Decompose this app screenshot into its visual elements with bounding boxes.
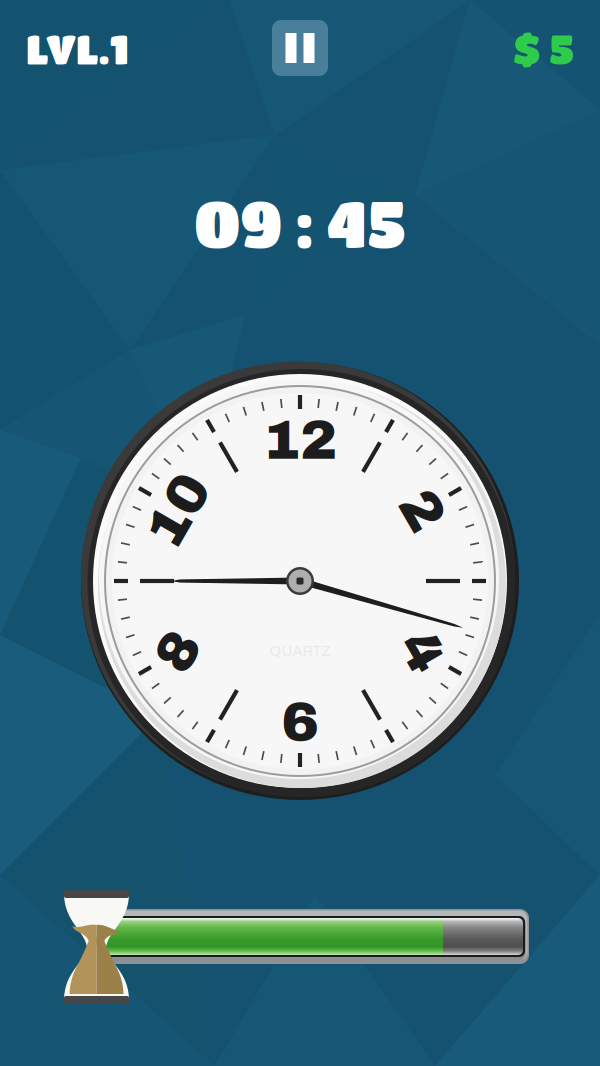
staticText: 8: [159, 621, 196, 682]
staticText: 2: [404, 480, 441, 541]
staticText: 45: [327, 186, 406, 259]
staticText: 09: [194, 186, 282, 259]
staticText: QUARTZ: [269, 643, 330, 659]
button[interactable]: Pause: [272, 20, 328, 76]
staticText: 10: [141, 480, 215, 541]
staticText: :: [295, 186, 314, 259]
staticText: LVL.1: [26, 24, 129, 72]
staticText: $ 5: [513, 24, 574, 72]
staticText: 6: [281, 691, 318, 752]
staticText: 4: [404, 621, 441, 682]
staticText: 12: [263, 409, 337, 470]
